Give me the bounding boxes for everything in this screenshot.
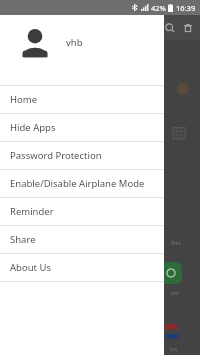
button[interactable]: Reminder bbox=[0, 198, 164, 225]
button[interactable]: Password Protection bbox=[0, 142, 164, 169]
staticText: vhb bbox=[66, 36, 83, 49]
button[interactable]: Hide Apps bbox=[0, 114, 164, 141]
staticText: About Us bbox=[10, 261, 51, 274]
button[interactable]: App bbox=[160, 262, 182, 284]
staticText: Enable/Disable Airplane Mode bbox=[10, 177, 145, 190]
button[interactable]: Home bbox=[0, 86, 164, 113]
button[interactable]: Delete bbox=[180, 20, 196, 36]
button[interactable]: vhb bbox=[0, 0, 164, 85]
button[interactable]: Share bbox=[0, 226, 164, 253]
staticText: tos bbox=[170, 346, 178, 353]
staticText: 16:39 bbox=[176, 3, 196, 13]
staticText: Share bbox=[10, 233, 36, 246]
staticText: files bbox=[170, 240, 181, 247]
staticText: Password Protection bbox=[10, 149, 102, 162]
button[interactable]: About Us bbox=[0, 254, 164, 281]
staticText: Hide Apps bbox=[10, 121, 56, 134]
staticText: Home bbox=[10, 93, 38, 106]
staticText: Reminder bbox=[10, 205, 54, 218]
button[interactable]: Search bbox=[162, 20, 178, 36]
button[interactable]: Enable/Disable Airplane Mode bbox=[0, 170, 164, 197]
staticText: 42% bbox=[151, 3, 166, 13]
staticText: one bbox=[170, 290, 179, 297]
